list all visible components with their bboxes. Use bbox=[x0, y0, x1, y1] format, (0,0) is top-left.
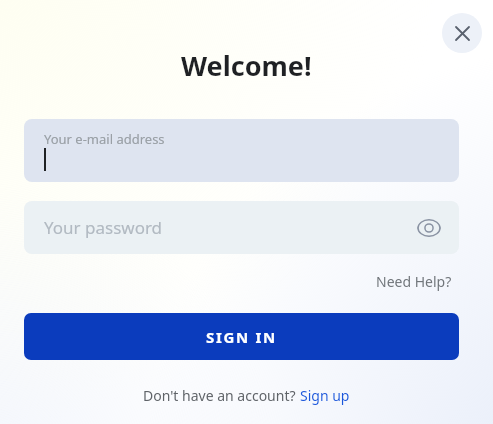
button[interactable]: Need Help? bbox=[373, 270, 455, 293]
button[interactable]: Your e-mail address bbox=[24, 119, 459, 182]
button[interactable]: Sign up bbox=[300, 386, 350, 405]
staticText: Sign up bbox=[300, 386, 350, 405]
staticText: Need Help? bbox=[376, 272, 452, 291]
button[interactable]: Close bbox=[442, 13, 482, 53]
staticText: SIGN IN bbox=[206, 327, 277, 347]
button[interactable]: SIGN IN bbox=[24, 313, 459, 360]
staticText: Your password bbox=[44, 216, 163, 239]
button[interactable]: Show password bbox=[411, 210, 447, 246]
staticText: Your e-mail address bbox=[44, 130, 165, 148]
staticText: Welcome! bbox=[181, 47, 312, 84]
staticText: Don't have an account? bbox=[143, 386, 300, 405]
button[interactable]: Your password bbox=[24, 201, 459, 254]
